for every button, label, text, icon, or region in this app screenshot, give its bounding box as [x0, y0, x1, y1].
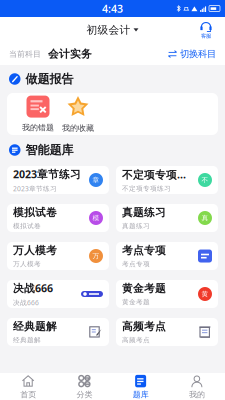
staticText: 做题报告: [25, 72, 73, 86]
staticText: 真题练习: [122, 222, 150, 230]
staticText: 我的收藏: [62, 123, 94, 133]
staticText: 章: [92, 176, 99, 184]
button[interactable]: 万人模考: [7, 242, 109, 270]
staticText: 不定项专项练习: [122, 167, 194, 181]
button[interactable]: 初级会计: [81, 19, 143, 40]
staticText: 真题练习: [122, 206, 166, 219]
staticText: 决战666: [13, 298, 39, 307]
staticText: 不定项专项练习: [122, 184, 171, 193]
button[interactable]: 真题练习: [116, 204, 218, 232]
staticText: 考点专项: [122, 260, 150, 268]
staticText: 首页: [20, 390, 36, 399]
button[interactable]: 我的: [169, 371, 225, 400]
staticText: 客服: [201, 33, 211, 39]
staticText: 2023章节练习: [13, 184, 57, 193]
staticText: 初级会计: [86, 23, 130, 36]
staticText: 黄金考题: [122, 282, 166, 295]
staticText: 万人模考: [13, 260, 41, 268]
button[interactable]: 经典题解: [7, 318, 109, 346]
staticText: 会计实务: [48, 47, 92, 60]
button[interactable]: 切换科目: [168, 45, 216, 63]
button[interactable]: 考点专项: [116, 242, 218, 270]
staticText: 模: [92, 214, 99, 222]
button[interactable]: 题库: [112, 371, 169, 400]
button[interactable]: 高频考点: [116, 318, 218, 346]
staticText: 我的: [189, 390, 205, 399]
staticText: 模拟试卷: [13, 222, 41, 230]
staticText: 决战666: [13, 281, 53, 295]
button[interactable]: 黄金考题: [116, 280, 218, 308]
staticText: 智能题库: [25, 143, 73, 157]
staticText: 当前科目: [9, 49, 41, 59]
button[interactable]: 首页: [0, 371, 56, 400]
staticText: 考点专项: [122, 244, 166, 257]
button[interactable]: 客服: [193, 19, 219, 41]
button[interactable]: 分类: [56, 371, 112, 400]
staticText: 万人模考: [13, 244, 57, 257]
staticText: 经典题解: [13, 320, 57, 333]
staticText: 我的错题: [22, 123, 54, 132]
staticText: 题库: [133, 390, 149, 399]
staticText: 高频考点: [122, 320, 166, 333]
button[interactable]: 我的错题: [18, 96, 58, 132]
button[interactable]: 我的收藏: [58, 95, 98, 133]
staticText: 真: [201, 214, 208, 222]
staticText: 不: [201, 176, 208, 184]
staticText: 黄金考题: [122, 298, 150, 306]
staticText: 万: [92, 252, 99, 260]
staticText: 2023章节练习: [13, 167, 81, 181]
staticText: 经典题解: [13, 336, 41, 344]
button[interactable]: 2023章节练习: [7, 166, 109, 194]
staticText: 模拟试卷: [13, 206, 57, 219]
staticText: 黄: [201, 290, 208, 298]
staticText: 4:43: [102, 1, 123, 16]
button[interactable]: 模拟试卷: [7, 204, 109, 232]
button[interactable]: 不定项专项练习: [116, 166, 218, 194]
staticText: 高频考点: [122, 336, 150, 344]
staticText: 切换科目: [180, 48, 216, 60]
staticText: 分类: [76, 390, 92, 399]
button[interactable]: 决战666: [7, 280, 109, 308]
